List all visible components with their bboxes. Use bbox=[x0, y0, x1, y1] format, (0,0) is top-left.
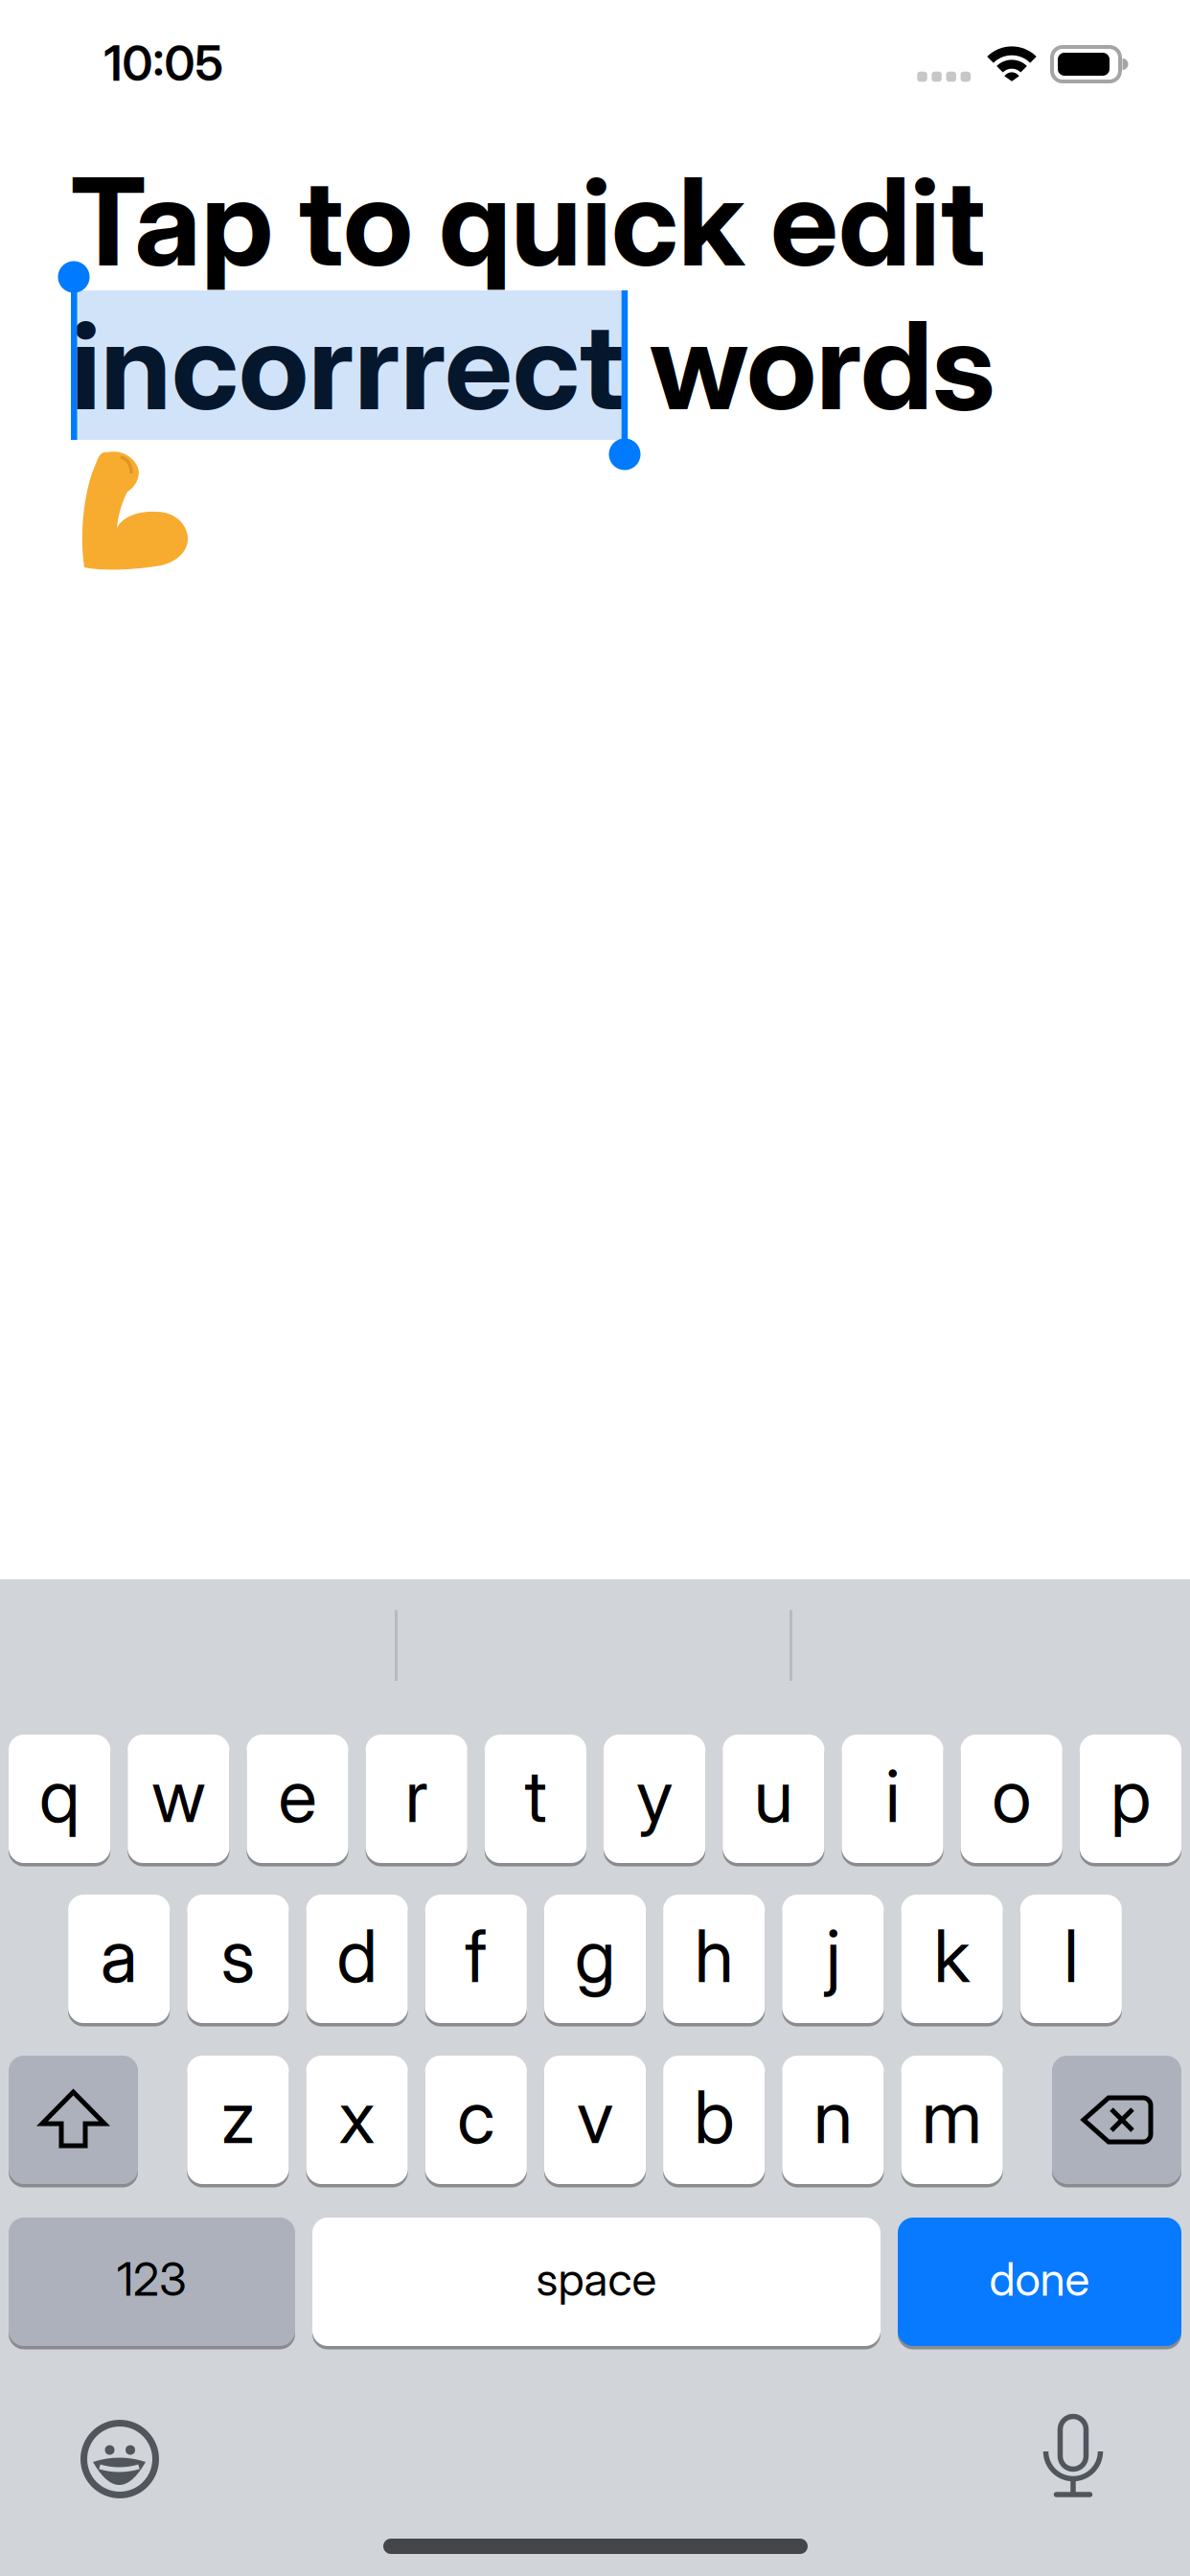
staticText: g bbox=[575, 1912, 615, 1999]
staticText: r bbox=[405, 1752, 428, 1839]
button[interactable]: d bbox=[306, 1895, 408, 2023]
button[interactable]: g bbox=[544, 1895, 646, 2023]
staticText: d bbox=[337, 1912, 377, 1999]
button[interactable]: e bbox=[247, 1735, 348, 1863]
staticText: u bbox=[754, 1752, 793, 1839]
staticText: 10:05 bbox=[104, 34, 224, 92]
staticText: b bbox=[694, 2073, 734, 2160]
button[interactable]: Dictate bbox=[1031, 2410, 1115, 2498]
staticText: t bbox=[524, 1752, 547, 1839]
staticText: k bbox=[934, 1912, 970, 1999]
button[interactable]: s bbox=[187, 1895, 289, 2023]
button[interactable]: v bbox=[544, 2056, 646, 2184]
staticText: h bbox=[694, 1912, 734, 1999]
button[interactable]: p bbox=[1080, 1735, 1181, 1863]
staticText: e bbox=[278, 1752, 317, 1839]
staticText: l bbox=[1064, 1912, 1078, 1999]
button[interactable]: q bbox=[9, 1735, 110, 1863]
button[interactable]: j bbox=[782, 1895, 884, 2023]
staticText: w bbox=[152, 1752, 205, 1839]
staticText: a bbox=[100, 1912, 138, 1999]
button[interactable]: o bbox=[961, 1735, 1062, 1863]
button[interactable]: Shift bbox=[9, 2056, 138, 2184]
staticText: j bbox=[826, 1912, 840, 1999]
staticText: y bbox=[636, 1752, 673, 1839]
button[interactable]: i bbox=[842, 1735, 943, 1863]
button[interactable]: 123 bbox=[9, 2218, 295, 2346]
staticText: done bbox=[989, 2251, 1090, 2307]
button[interactable]: a bbox=[68, 1895, 170, 2023]
staticText: space bbox=[536, 2251, 657, 2307]
button[interactable]: y bbox=[604, 1735, 705, 1863]
button[interactable]: z bbox=[187, 2056, 289, 2184]
staticText: incorrrect words bbox=[71, 292, 995, 438]
staticText: n bbox=[813, 2073, 853, 2160]
staticText: i bbox=[885, 1752, 900, 1839]
button[interactable]: u bbox=[723, 1735, 824, 1863]
staticText: z bbox=[221, 2073, 255, 2160]
staticText: f bbox=[465, 1912, 487, 1999]
staticText: o bbox=[992, 1752, 1031, 1839]
staticText: 123 bbox=[117, 2251, 187, 2307]
button[interactable]: m bbox=[901, 2056, 1003, 2184]
staticText: m bbox=[922, 2073, 982, 2160]
staticText: q bbox=[39, 1752, 80, 1839]
staticText: x bbox=[339, 2073, 375, 2160]
button[interactable]: b bbox=[663, 2056, 765, 2184]
button[interactable]: c bbox=[425, 2056, 527, 2184]
staticText: v bbox=[577, 2073, 613, 2160]
button[interactable]: w bbox=[128, 1735, 229, 1863]
button[interactable]: k bbox=[901, 1895, 1003, 2023]
button[interactable]: n bbox=[782, 2056, 884, 2184]
button[interactable]: t bbox=[485, 1735, 586, 1863]
button[interactable]: h bbox=[663, 1895, 765, 2023]
button[interactable]: Emoji bbox=[78, 2415, 162, 2503]
staticText: s bbox=[221, 1912, 255, 1999]
button[interactable]: space bbox=[312, 2218, 881, 2346]
staticText: c bbox=[457, 2073, 495, 2160]
button[interactable]: done bbox=[898, 2218, 1181, 2346]
button[interactable]: x bbox=[306, 2056, 408, 2184]
staticText: p bbox=[1110, 1752, 1151, 1839]
staticText: Tap to quick edit bbox=[70, 149, 985, 295]
button[interactable]: l bbox=[1020, 1895, 1122, 2023]
button[interactable]: Delete bbox=[1052, 2056, 1181, 2184]
button[interactable]: r bbox=[366, 1735, 467, 1863]
button[interactable]: f bbox=[425, 1895, 527, 2023]
